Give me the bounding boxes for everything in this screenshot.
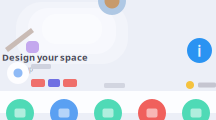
button[interactable]: Tag [48,79,60,87]
button[interactable]: App [94,99,122,120]
button[interactable]: Account [7,62,29,84]
button[interactable]: App [182,99,210,120]
staticText: Design your space [2,51,88,63]
button[interactable]: Info [187,38,212,63]
button[interactable]: App [138,99,166,120]
button[interactable]: Profile [98,0,126,15]
staticText: i [197,40,202,61]
button[interactable]: App [6,99,34,120]
button[interactable]: Tag [63,79,77,87]
staticText: set up [2,64,33,73]
button[interactable]: Open [26,41,39,53]
button[interactable]: App [50,99,78,120]
button[interactable]: Tag [31,79,45,87]
